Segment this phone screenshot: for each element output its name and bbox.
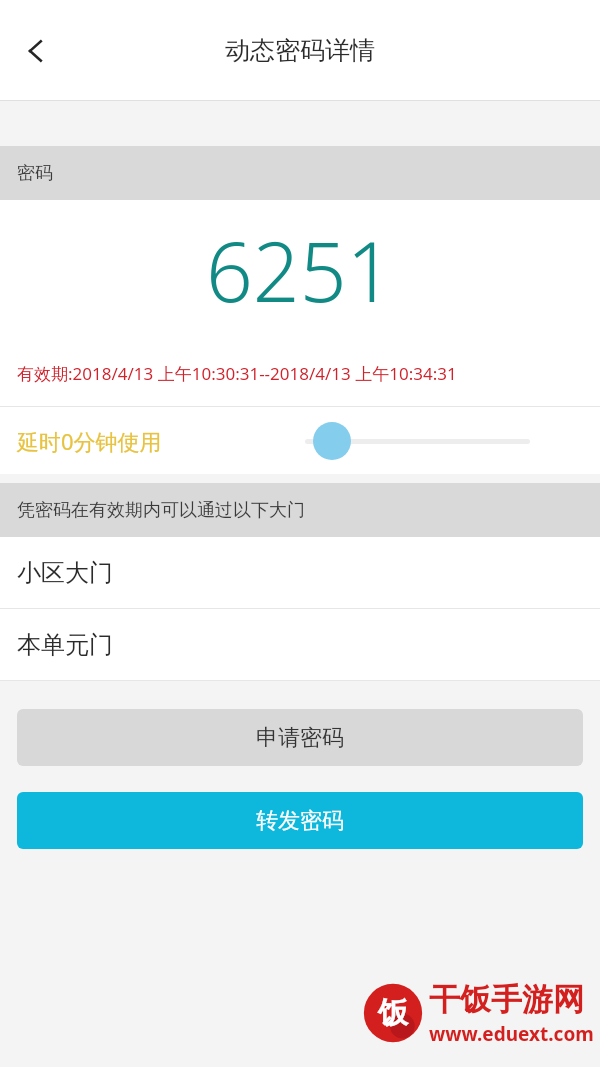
staticText: 6251 <box>206 214 394 326</box>
button[interactable]: Back <box>8 23 64 79</box>
button[interactable]: 转发密码 <box>17 792 583 849</box>
button[interactable]: 本单元门 <box>0 609 600 680</box>
button[interactable]: 小区大门 <box>0 537 600 608</box>
staticText: 有效期:2018/4/13 上午10:30:31--2018/4/13 上午10… <box>17 362 457 385</box>
staticText: 小区大门 <box>17 558 113 588</box>
staticText: 延时0分钟使用 <box>17 426 162 456</box>
button[interactable]: Delay slider <box>305 419 530 463</box>
staticText: 申请密码 <box>256 724 344 752</box>
staticText: 动态密码详情 <box>225 35 375 66</box>
staticText: 密码 <box>17 162 53 185</box>
staticText: 干饭手游网 <box>429 980 584 1019</box>
staticText: 转发密码 <box>256 807 344 835</box>
staticText: 本单元门 <box>17 630 113 660</box>
staticText: 凭密码在有效期内可以通过以下大门 <box>17 499 305 522</box>
staticText: www.eduext.com <box>429 1021 594 1047</box>
staticText: 饭 <box>378 994 408 1032</box>
button[interactable]: 申请密码 <box>17 709 583 766</box>
